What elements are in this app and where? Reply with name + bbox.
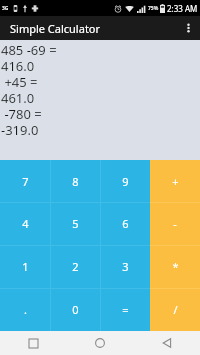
button[interactable]: 8: [50, 160, 100, 202]
staticText: 416.0: [1, 57, 35, 73]
button[interactable]: .: [0, 288, 50, 331]
button[interactable]: -: [150, 202, 200, 245]
staticText: 485 -69 =: [1, 41, 57, 57]
button[interactable]: +: [150, 160, 200, 202]
staticText: -319.0: [1, 121, 39, 137]
staticText: 9: [122, 174, 129, 189]
button[interactable]: 4: [0, 202, 50, 245]
staticText: 4: [22, 216, 29, 231]
button[interactable]: =: [100, 288, 150, 331]
staticText: 5: [72, 216, 79, 231]
button[interactable]: 2: [50, 245, 100, 288]
staticText: 3G: [2, 5, 9, 12]
button[interactable]: 6: [100, 202, 150, 245]
staticText: -: [173, 216, 177, 231]
button[interactable]: 0: [50, 288, 100, 331]
staticText: 2:33 AM: [167, 3, 198, 14]
button[interactable]: Home: [66, 331, 133, 355]
staticText: 3: [122, 259, 129, 274]
button[interactable]: 1: [0, 245, 50, 288]
staticText: 7: [22, 174, 29, 189]
staticText: 8: [72, 174, 79, 189]
staticText: 6: [122, 216, 129, 231]
staticText: /: [173, 302, 178, 317]
staticText: .: [24, 302, 27, 317]
staticText: -780 =: [1, 105, 42, 121]
button[interactable]: *: [150, 245, 200, 288]
button[interactable]: Back: [133, 331, 200, 355]
staticText: *: [172, 259, 179, 274]
button[interactable]: Recent apps: [0, 331, 66, 355]
button[interactable]: 5: [50, 202, 100, 245]
staticText: 0: [72, 302, 79, 317]
staticText: Simple Calculator: [10, 21, 101, 36]
button[interactable]: 9: [100, 160, 150, 202]
staticText: =: [122, 302, 129, 317]
staticText: 1: [22, 259, 29, 274]
staticText: 2: [72, 259, 79, 274]
staticText: +45 =: [1, 73, 38, 89]
button[interactable]: More options: [176, 16, 200, 40]
staticText: 75%: [148, 5, 159, 12]
staticText: +: [172, 174, 179, 189]
staticText: 461.0: [1, 89, 35, 105]
button[interactable]: 7: [0, 160, 50, 202]
button[interactable]: 3: [100, 245, 150, 288]
button[interactable]: /: [150, 288, 200, 331]
